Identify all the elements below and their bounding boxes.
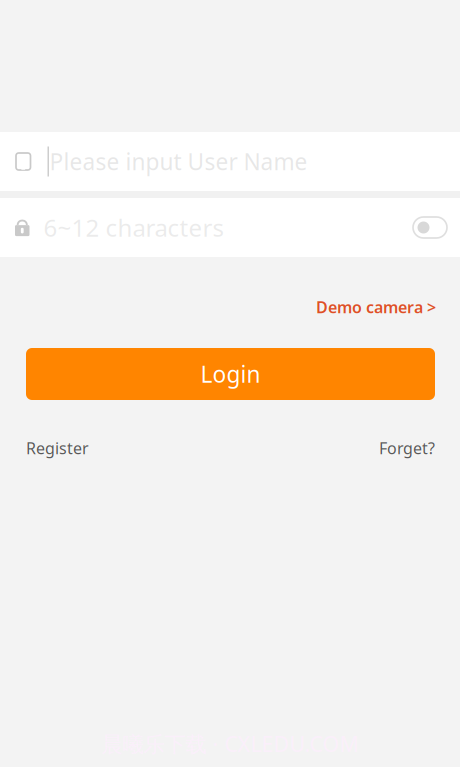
staticText: Demo camera > <box>316 296 436 318</box>
button[interactable]: Login <box>26 348 435 400</box>
button[interactable]: Register <box>26 437 89 459</box>
staticText: Please input User Name <box>49 146 307 176</box>
button[interactable]: Demo camera > <box>316 296 436 318</box>
staticText: 6~12 characters <box>43 212 223 243</box>
button[interactable]: Password <box>0 198 413 257</box>
button[interactable]: Forget? <box>379 437 435 459</box>
staticText: Forget? <box>379 437 435 459</box>
button[interactable]: Show password <box>413 198 460 257</box>
staticText: Register <box>26 437 89 459</box>
staticText: Login <box>200 359 260 389</box>
button[interactable]: User Name <box>0 132 460 191</box>
